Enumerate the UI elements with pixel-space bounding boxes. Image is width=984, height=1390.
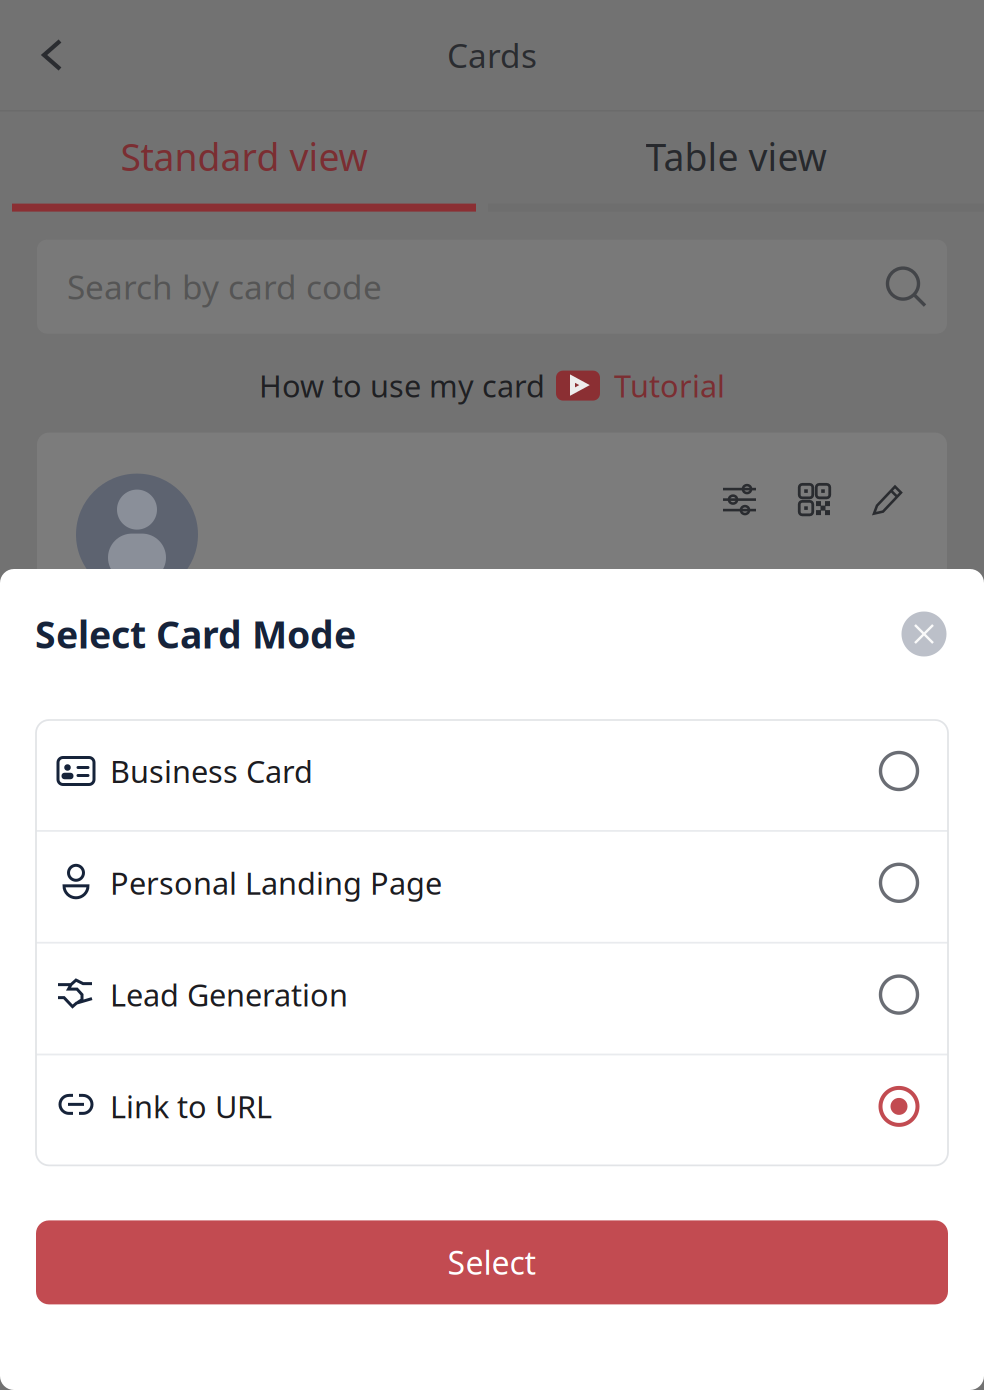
button[interactable]: Close [897,607,951,661]
button[interactable]: Personal Landing Page [36,832,948,942]
staticText: Cards [447,33,537,77]
button[interactable]: Table view [488,112,984,212]
staticText: Select Card Mode [35,609,356,659]
button[interactable]: Back [0,20,80,90]
button[interactable]: Business Card [36,720,948,830]
button[interactable]: Standard view [0,112,488,212]
staticText: How to use my card [259,365,545,406]
staticText: Business Card [110,751,313,791]
staticText: Table view [645,132,826,181]
button[interactable]: Lead Generation [36,944,948,1054]
staticText: Personal Landing Page [110,862,442,903]
staticText: Search by card code [67,264,382,309]
staticText: Lead Generation [110,974,348,1015]
staticText: Select [447,1241,536,1284]
button[interactable]: Select [36,1220,948,1304]
staticText: Tutorial [614,365,725,406]
button[interactable]: Link to URL [36,1055,948,1165]
staticText: Link to URL [110,1086,272,1127]
staticText: Standard view [120,132,367,181]
